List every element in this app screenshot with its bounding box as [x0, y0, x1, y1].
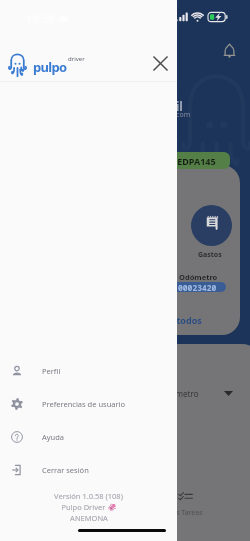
button[interactable]: Cerrar sesión [0, 453, 177, 486]
button[interactable]: Perfil [0, 354, 177, 387]
staticText: driver [68, 55, 85, 63]
button[interactable]: Notifications [217, 39, 241, 63]
staticText: jgabriel@mail.com [129, 110, 191, 120]
button[interactable]: Ayuda [0, 420, 177, 453]
staticText: Cerrar sesión [42, 465, 89, 475]
staticText: Versión 1.0.58 (108) [54, 491, 123, 501]
staticText: Gastos [198, 250, 222, 260]
button[interactable]: ABEDPA145 [140, 152, 230, 169]
staticText: Juan Gabril [117, 98, 183, 114]
staticText: Ver todos [159, 314, 202, 326]
staticText: Odómetro [179, 272, 218, 282]
staticText: 00023420 [178, 282, 217, 292]
staticText: ABEDPA145 [165, 155, 216, 167]
staticText: Preferencias de usuario [42, 399, 126, 409]
staticText: Pulpo Driver 🦑 [61, 502, 117, 512]
button[interactable]: Preferencias de usuario [0, 387, 177, 420]
staticText: Ayuda [42, 432, 65, 442]
button[interactable]: Close drawer [145, 48, 175, 78]
staticText: ANEMONA [70, 513, 108, 523]
button[interactable]: Mis Tareas [168, 492, 203, 518]
button[interactable]: Gastos [191, 205, 232, 246]
staticText: Seleccione Odómetro [118, 388, 199, 399]
staticText: pulpo [33, 58, 67, 76]
staticText: Perfil [42, 366, 61, 376]
staticText: Mis Tareas [168, 508, 203, 518]
